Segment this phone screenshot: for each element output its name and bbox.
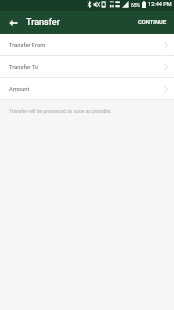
button[interactable]: Back	[0, 11, 26, 34]
button[interactable]: Transfer To	[0, 56, 174, 78]
staticText: Transfer will be processed as soon as po…	[9, 108, 112, 114]
button[interactable]: Amount	[0, 78, 174, 100]
button[interactable]: CONTINUE	[131, 13, 174, 32]
staticText: Transfer	[26, 17, 60, 28]
staticText: Transfer To	[9, 64, 39, 71]
staticText: CONTINUE	[138, 19, 167, 26]
staticText: Transfer From	[9, 42, 46, 49]
staticText: 65%	[131, 2, 141, 8]
button[interactable]: Transfer From	[0, 34, 174, 56]
staticText: 12:44 PM	[148, 1, 172, 8]
staticText: Amount	[9, 86, 30, 93]
